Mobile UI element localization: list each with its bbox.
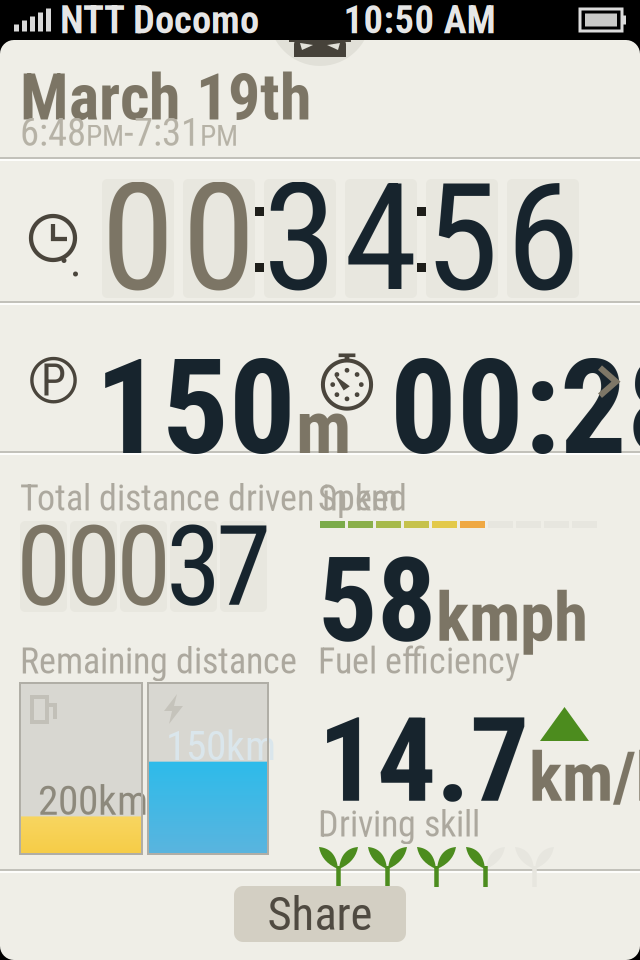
staticText: 0 (101, 151, 175, 326)
staticText: 3 (263, 151, 337, 326)
staticText: 150 (95, 331, 296, 485)
staticText: 00:28 (390, 331, 640, 485)
staticText: 7 (216, 501, 271, 632)
button[interactable]: Share (234, 886, 406, 942)
staticText: 4 (344, 151, 418, 326)
staticText: 0 (182, 151, 256, 326)
staticText: PM (200, 119, 238, 153)
staticText: 150km (166, 722, 276, 770)
staticText: Driving skill (318, 803, 480, 845)
staticText: 6 (506, 151, 580, 326)
staticText: P (41, 354, 66, 407)
staticText: Total distance driven in km (20, 477, 398, 519)
staticText: 6:48 (20, 110, 86, 155)
staticText: 14.7 (318, 692, 529, 829)
staticText: 5 (425, 151, 499, 326)
staticText: m (296, 384, 351, 471)
staticText: 0 (116, 501, 171, 632)
staticText: km/h (529, 736, 640, 818)
staticText: March 19th (20, 60, 312, 135)
staticText: Share (267, 887, 372, 941)
staticText: NTT Docomo (60, 0, 259, 43)
staticText: 3 (166, 501, 221, 632)
staticText: 0 (66, 501, 121, 632)
staticText: 200km (38, 776, 148, 825)
button[interactable]: P (0, 305, 640, 455)
staticText: PM (86, 119, 124, 153)
staticText: 0 (16, 501, 71, 632)
staticText: Remaining distance (20, 640, 297, 682)
staticText: 10:50 AM (343, 0, 495, 43)
button[interactable]: Vehicle (269, 40, 371, 92)
staticText: Fuel efficiency (318, 640, 520, 682)
staticText: kmph (436, 576, 588, 658)
staticText: 58 (318, 532, 436, 669)
staticText: Speed (318, 477, 407, 519)
staticText: -7:31 (124, 110, 200, 155)
